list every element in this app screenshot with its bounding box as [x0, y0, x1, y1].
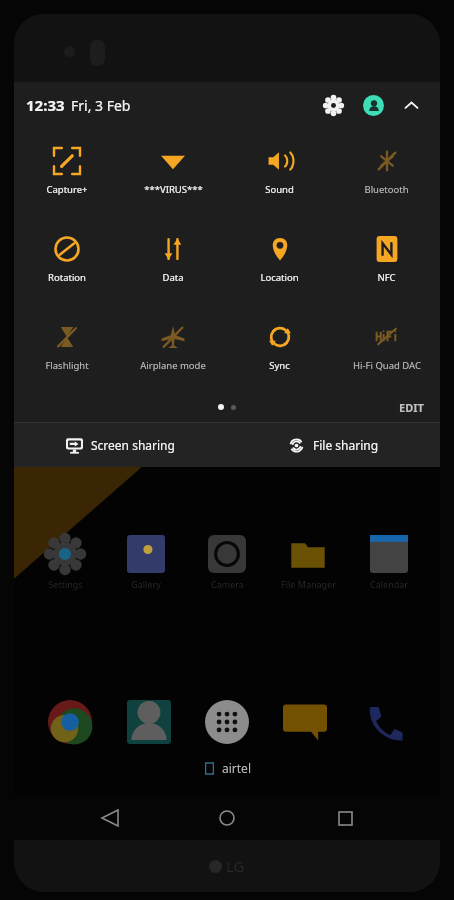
staticText: Rotation: [48, 271, 86, 284]
staticText: Screen sharing: [91, 437, 175, 453]
staticText: EDIT: [399, 400, 424, 415]
button[interactable]: Collapse: [394, 88, 428, 122]
staticText: Calendar: [370, 578, 408, 590]
staticText: Sync: [269, 359, 290, 372]
staticText: Flashlight: [45, 359, 89, 372]
staticText: Data: [162, 271, 184, 284]
button[interactable]: Screen sharing: [14, 423, 227, 467]
staticText: Gallery: [131, 578, 161, 590]
button[interactable]: Gallery: [110, 535, 182, 590]
button[interactable]: File sharing: [227, 423, 440, 467]
button[interactable]: Recents: [323, 796, 367, 840]
staticText: Bluetooth: [364, 183, 409, 196]
button[interactable]: Bluetooth: [333, 128, 440, 216]
staticText: Camera: [211, 578, 244, 590]
button[interactable]: Flashlight: [14, 304, 120, 392]
button[interactable]: Home: [205, 796, 249, 840]
staticText: Capture+: [46, 183, 88, 196]
staticText: Sound: [265, 183, 294, 196]
staticText: 12:33: [26, 95, 65, 115]
staticText: Settings: [48, 578, 83, 590]
button[interactable]: Rotation: [14, 216, 120, 304]
staticText: File sharing: [313, 437, 379, 453]
button[interactable]: Capture+: [14, 128, 120, 216]
button[interactable]: Location: [226, 216, 333, 304]
button[interactable]: Airplane mode: [120, 304, 226, 392]
button[interactable]: Apps: [199, 694, 255, 750]
button[interactable]: NFC: [333, 216, 440, 304]
button[interactable]: Camera: [191, 535, 263, 590]
staticText: LG: [226, 856, 245, 876]
button[interactable]: Sound: [226, 128, 333, 216]
button[interactable]: ***VIRUS***: [120, 128, 226, 216]
staticText: ***VIRUS***: [144, 183, 203, 196]
button[interactable]: User account: [356, 88, 390, 122]
button[interactable]: Back: [88, 796, 132, 840]
button[interactable]: Chrome: [42, 694, 98, 750]
button[interactable]: Phone: [356, 694, 412, 750]
button[interactable]: Contacts: [121, 694, 177, 750]
staticText: Airplane mode: [140, 359, 206, 372]
staticText: Location: [260, 271, 299, 284]
button[interactable]: Messages: [277, 694, 333, 750]
button[interactable]: Settings: [29, 535, 101, 590]
button[interactable]: EDIT: [393, 396, 430, 419]
button[interactable]: Hi-Fi Quad DAC: [333, 304, 440, 392]
button[interactable]: Calendar: [353, 535, 425, 590]
staticText: Hi-Fi Quad DAC: [353, 359, 421, 372]
button[interactable]: File Manager: [272, 535, 344, 590]
staticText: airtel: [222, 760, 251, 776]
staticText: Fri, 3 Feb: [71, 96, 131, 115]
staticText: File Manager: [281, 578, 336, 590]
button[interactable]: Sync: [226, 304, 333, 392]
staticText: NFC: [377, 271, 396, 284]
button[interactable]: Settings: [316, 88, 350, 122]
button[interactable]: Data: [120, 216, 226, 304]
